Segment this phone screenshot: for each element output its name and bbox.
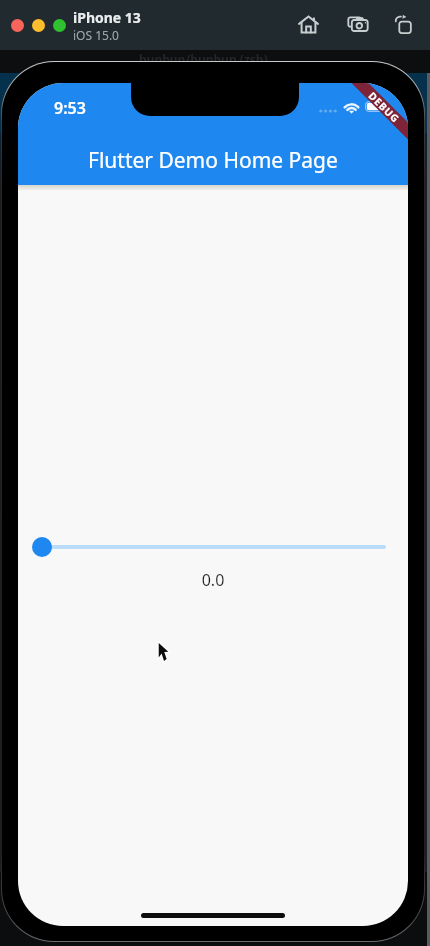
staticText: Flutter Demo Home Page <box>88 146 338 175</box>
button[interactable]: Home <box>291 7 325 41</box>
button[interactable]: Screenshot <box>341 7 375 41</box>
button[interactable]: Rotate <box>386 7 420 41</box>
staticText: 0.0 <box>18 569 408 591</box>
staticText: DEBUG <box>366 89 403 126</box>
staticText: 9:53 <box>54 97 86 119</box>
button[interactable]: Window control <box>53 19 66 32</box>
staticText: bunbun/bunbun (zsh) <box>139 51 268 67</box>
button[interactable]: Window control <box>11 19 24 32</box>
button[interactable]: Window control <box>32 19 45 32</box>
staticText: iPhone 13 <box>73 8 141 27</box>
staticText: iOS 15.0 <box>73 27 119 43</box>
